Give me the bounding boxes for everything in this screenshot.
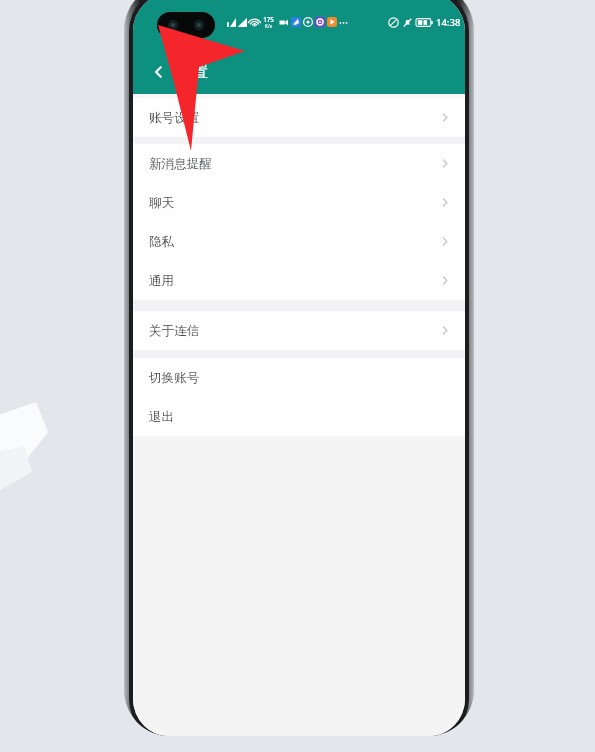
staticText: 账号设置	[149, 110, 200, 126]
button[interactable]: 通用	[133, 261, 465, 300]
button[interactable]: 账号设置	[133, 98, 465, 137]
button[interactable]: 新消息提醒	[133, 144, 465, 183]
staticText: 退出	[149, 409, 175, 425]
staticText: 关于连信	[149, 323, 200, 339]
button[interactable]: 切换账号	[133, 358, 465, 397]
staticText: 切换账号	[149, 370, 200, 386]
button[interactable]: 隐私	[133, 222, 465, 261]
staticText: 通用	[149, 273, 175, 289]
button[interactable]: 关于连信	[133, 311, 465, 350]
button[interactable]: 聊天	[133, 183, 465, 222]
button[interactable]: 返回	[141, 54, 177, 90]
staticText: 隐私	[149, 234, 175, 250]
button[interactable]: 退出	[133, 397, 465, 436]
staticText: 175	[263, 15, 274, 23]
staticText: 设置	[177, 62, 208, 82]
staticText: 新消息提醒	[149, 156, 212, 172]
staticText: 聊天	[149, 195, 175, 211]
staticText: 14:38	[436, 16, 461, 29]
staticText: K/s	[265, 23, 272, 29]
